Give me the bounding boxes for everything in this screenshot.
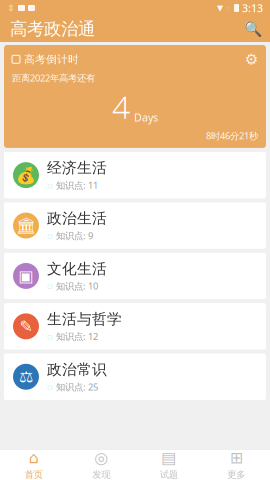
staticText: ◌: [47, 179, 53, 191]
staticText: 3:13: [242, 1, 263, 15]
staticText: 知识点: 10: [56, 280, 98, 292]
staticText: ▣: [18, 267, 33, 285]
button[interactable]: ▤: [135, 445, 202, 480]
staticText: 高考倒计时: [24, 53, 79, 66]
button[interactable]: ⚖: [4, 354, 266, 400]
button[interactable]: 💰: [4, 152, 266, 198]
staticText: 文化生活: [47, 260, 107, 278]
staticText: ▼: [217, 3, 223, 13]
staticText: ◌: [226, 3, 231, 13]
button[interactable]: ◎: [67, 445, 135, 480]
staticText: 发现: [92, 469, 110, 480]
staticText: 🏛: [16, 216, 36, 235]
staticText: 试题: [160, 469, 178, 480]
staticText: ⌂: [29, 449, 39, 467]
staticText: ◌: [47, 381, 53, 393]
staticText: ⇳: [7, 3, 15, 13]
staticText: 高考政治通: [10, 18, 95, 40]
staticText: 更多: [227, 469, 245, 480]
staticText: 经济生活: [47, 159, 107, 177]
staticText: 8时46分21秒: [206, 129, 258, 142]
staticText: ⚙: [245, 51, 258, 68]
staticText: ▤: [161, 449, 176, 467]
button[interactable]: 高考倒计时: [4, 45, 266, 148]
staticText: 知识点: 25: [56, 381, 98, 393]
staticText: ◌: [47, 330, 53, 343]
staticText: 首页: [25, 469, 43, 480]
button[interactable]: 🏛: [4, 202, 266, 249]
staticText: ◌: [47, 280, 53, 292]
button[interactable]: 搜索: [240, 16, 266, 42]
staticText: ⊞: [230, 449, 243, 467]
button[interactable]: ▣: [4, 253, 266, 299]
staticText: 知识点: 12: [56, 330, 98, 343]
staticText: 💰: [16, 166, 36, 184]
staticText: ⚖: [19, 368, 33, 386]
staticText: 🔍: [244, 21, 262, 37]
staticText: 距离2022年高考还有: [12, 72, 95, 84]
staticText: ◎: [94, 449, 108, 467]
button[interactable]: ⌂: [0, 445, 67, 480]
staticText: ✎: [19, 317, 32, 335]
staticText: Days: [134, 110, 158, 125]
staticText: 4: [112, 85, 130, 127]
staticText: 政治常识: [47, 361, 107, 379]
button[interactable]: ✎: [4, 303, 266, 350]
staticText: 知识点: 11: [56, 179, 98, 191]
staticText: 知识点: 9: [56, 229, 93, 242]
staticText: 生活与哲学: [47, 310, 122, 328]
staticText: 政治生活: [47, 209, 107, 227]
staticText: ◌: [47, 229, 53, 242]
button[interactable]: ⊞: [202, 445, 270, 480]
